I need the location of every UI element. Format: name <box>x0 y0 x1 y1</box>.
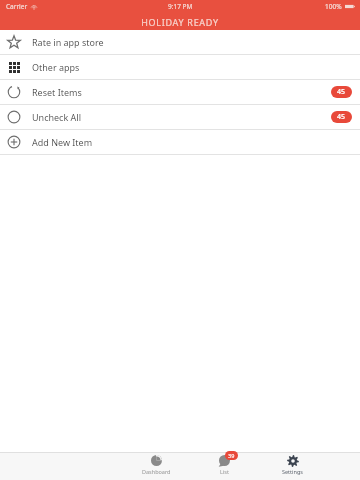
staticText: HOLIDAY READY <box>141 16 219 28</box>
staticText: 45 <box>337 112 346 122</box>
other: Dashboard <box>151 455 162 466</box>
staticText: Uncheck All <box>32 111 81 123</box>
button[interactable]: Dashboard <box>134 454 178 475</box>
staticText: 9:17 PM <box>168 2 193 11</box>
staticText: Other apps <box>32 61 80 73</box>
staticText: Settings <box>282 468 303 475</box>
staticText: List <box>220 468 229 475</box>
other: Uncheck All <box>7 110 21 124</box>
staticText: Reset Items <box>32 86 82 98</box>
staticText: Carrier <box>6 2 28 11</box>
staticText: 100% <box>325 2 342 11</box>
staticText: Add New Item <box>32 136 93 148</box>
other: Reset Items <box>7 85 21 99</box>
button[interactable]: Add New Item <box>0 130 360 154</box>
button[interactable]: Rate in app store <box>0 30 360 54</box>
staticText: Dashboard <box>142 468 171 475</box>
staticText: 39 <box>228 452 235 459</box>
staticText: 45 <box>337 87 346 97</box>
other: Settings <box>287 455 299 467</box>
other: List <box>219 455 230 466</box>
other: Other apps <box>9 62 20 73</box>
button[interactable]: List <box>202 454 246 475</box>
staticText: Rate in app store <box>32 36 104 48</box>
button[interactable]: Uncheck All <box>0 105 360 129</box>
button[interactable]: Reset Items <box>0 80 360 104</box>
other: Rate in app store <box>7 35 21 49</box>
button[interactable]: Settings <box>270 454 314 475</box>
button[interactable]: Other apps <box>0 55 360 79</box>
other: Add New Item <box>7 135 21 149</box>
